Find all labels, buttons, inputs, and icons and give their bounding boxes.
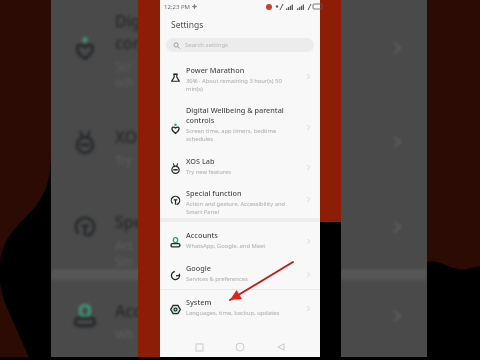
staticText: 12:23 PM — [164, 3, 190, 11]
staticText: schedules — [186, 135, 214, 143]
staticText: Smart Panel — [186, 208, 219, 216]
staticText: Services & preferences — [186, 275, 248, 283]
staticText: cor — [115, 32, 140, 54]
button[interactable]: Digital Wellbeing & parental — [160, 101, 320, 139]
staticText: Try new features — [186, 168, 232, 176]
staticText: min(s) — [186, 85, 203, 93]
staticText: Special function — [186, 188, 242, 198]
staticText: Spe — [115, 211, 143, 233]
staticText: Digital Wellbeing & parental — [186, 105, 284, 115]
staticText: 30% · About remaining 3 hour(s) 50 — [186, 77, 282, 85]
button[interactable]: XOS Lab — [160, 152, 320, 172]
button[interactable]: Power Marathon — [160, 61, 320, 89]
staticText: WhatsApp, Google, and Meet — [186, 242, 266, 250]
staticText: Dig — [115, 10, 141, 32]
staticText: Acc — [115, 300, 142, 322]
staticText: Google — [186, 263, 211, 273]
staticText: System — [186, 297, 212, 307]
button[interactable]: Search settings — [166, 38, 314, 52]
button[interactable]: Accounts — [160, 226, 320, 246]
staticText: controls — [186, 115, 215, 125]
staticText: XOS Lab — [186, 156, 215, 166]
staticText: Search settings — [185, 41, 228, 49]
button[interactable]: System — [160, 293, 320, 313]
button[interactable]: Special function — [160, 184, 320, 212]
staticText: XO — [115, 126, 138, 148]
staticText: Power Marathon — [186, 65, 245, 75]
staticText: Screen time, app timers, bedtime — [186, 127, 277, 135]
staticText: Action and gesture, Accessibility and — [186, 200, 286, 208]
staticText: Settings — [171, 19, 204, 31]
staticText: Languages, time, backup, updates — [186, 309, 280, 317]
button[interactable]: Recents — [190, 338, 208, 356]
button[interactable]: Google — [160, 259, 320, 279]
button[interactable]: Home — [231, 338, 249, 356]
staticText: Accounts — [186, 230, 218, 240]
button[interactable]: Back — [272, 338, 290, 356]
